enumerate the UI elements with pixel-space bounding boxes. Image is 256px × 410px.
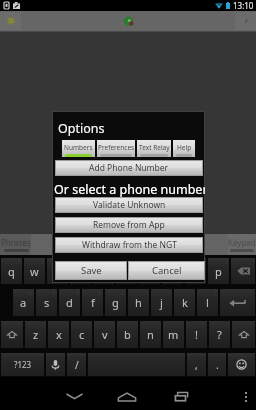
staticText: Keypad [228, 237, 256, 248]
staticText: t [102, 264, 106, 279]
button[interactable]: t [93, 258, 114, 284]
button[interactable]: Voice input [46, 353, 65, 376]
button[interactable]: Validate Unknown [56, 198, 202, 212]
button[interactable]: Space [88, 353, 185, 376]
button[interactable]: Remove from App [56, 218, 202, 232]
button[interactable]: s [36, 289, 57, 316]
button[interactable]: Phrases [0, 234, 31, 255]
button[interactable]: . [208, 353, 226, 376]
button[interactable]: d [59, 289, 80, 316]
button[interactable]: b [117, 321, 138, 348]
staticText: + [191, 290, 194, 297]
button[interactable]: ! [186, 321, 207, 348]
button[interactable]: f [82, 289, 103, 316]
staticText: n [147, 327, 154, 342]
button[interactable]: q [1, 258, 22, 284]
staticText: / [75, 358, 79, 372]
staticText: ! [195, 327, 198, 342]
button[interactable]: v [94, 321, 115, 348]
button[interactable]: Save [56, 262, 126, 279]
button[interactable]: e [47, 258, 68, 284]
button[interactable]: Keypad [228, 234, 256, 255]
button[interactable]: , [187, 353, 206, 376]
staticText: Validate Unknown [93, 199, 166, 211]
button[interactable]: n [140, 321, 161, 348]
staticText: y [124, 264, 130, 279]
staticText: & [121, 290, 125, 297]
staticText: Text Relay [139, 143, 170, 152]
button[interactable]: z [25, 321, 46, 348]
button[interactable]: k [174, 289, 195, 316]
button[interactable]: u [139, 258, 160, 284]
staticText: % [97, 290, 102, 297]
button[interactable]: Add Phone Number [56, 161, 202, 175]
button[interactable]: Shift [1, 321, 23, 348]
button[interactable]: App home [0, 12, 21, 30]
button[interactable]: j [151, 289, 172, 316]
staticText: 9 [202, 259, 205, 266]
button[interactable]: Backspace [231, 258, 255, 284]
button[interactable]: x [48, 321, 69, 348]
button[interactable]: Enter [220, 289, 255, 316]
button[interactable]: Preferences [97, 140, 135, 157]
button[interactable]: Numbers [62, 140, 95, 157]
button[interactable]: w [24, 258, 45, 284]
staticText: v [102, 327, 108, 342]
button[interactable]: Back [57, 377, 91, 410]
button[interactable]: Cancel [129, 262, 204, 279]
staticText: d [66, 295, 73, 310]
button[interactable]: c [71, 321, 92, 348]
staticText: u [146, 264, 153, 279]
button[interactable]: Overflow menu [235, 12, 256, 30]
staticText: ?123 [14, 359, 32, 370]
staticText: Options [58, 120, 105, 137]
staticText: Numbers [64, 143, 93, 152]
staticText: Remove from App [93, 219, 165, 231]
staticText: Help [177, 143, 192, 152]
button[interactable]: l [197, 289, 218, 316]
staticText: @ [28, 290, 33, 297]
button[interactable]: y [116, 258, 137, 284]
button[interactable]: Home [110, 377, 144, 410]
staticText: b [124, 327, 131, 342]
button[interactable]: ? [209, 321, 230, 348]
button[interactable]: m [163, 321, 184, 348]
button[interactable]: a [13, 289, 34, 316]
button[interactable]: o [185, 258, 206, 284]
staticText: 2 [41, 259, 44, 266]
button[interactable]: Help [173, 140, 195, 157]
staticText: 1 [18, 259, 21, 266]
button[interactable]: r [70, 258, 91, 284]
button[interactable]: Text Relay [137, 140, 171, 157]
staticText: m [168, 327, 179, 342]
staticText: 6 [133, 259, 136, 266]
button[interactable]: Menu [236, 377, 256, 410]
button[interactable]: p [208, 258, 229, 284]
button[interactable]: h [128, 289, 149, 316]
staticText: , [195, 358, 198, 372]
staticText: # [52, 290, 56, 297]
staticText: x [56, 327, 62, 342]
staticText: 5 [110, 259, 113, 266]
button[interactable]: g [105, 289, 126, 316]
staticText: o [192, 264, 199, 279]
staticText: i [171, 264, 174, 279]
staticText: l [206, 295, 209, 310]
staticText: 4 [87, 259, 90, 266]
staticText: q [8, 264, 15, 279]
staticText: 13:10 [233, 0, 254, 11]
button[interactable]: ?123 [1, 353, 44, 376]
button[interactable]: Recent apps [164, 377, 198, 410]
staticText: Withdraw from the NGT [82, 239, 177, 251]
button[interactable]: Withdraw from the NGT [56, 238, 202, 252]
staticText: h [135, 295, 142, 310]
button[interactable]: / [67, 353, 86, 376]
button[interactable]: Shift [232, 321, 255, 348]
button[interactable]: i [162, 258, 183, 284]
staticText: Or select a phone number and: [54, 181, 205, 198]
staticText: $ [76, 290, 79, 297]
staticText: . [216, 358, 219, 372]
button[interactable]: Emoji [228, 353, 255, 376]
